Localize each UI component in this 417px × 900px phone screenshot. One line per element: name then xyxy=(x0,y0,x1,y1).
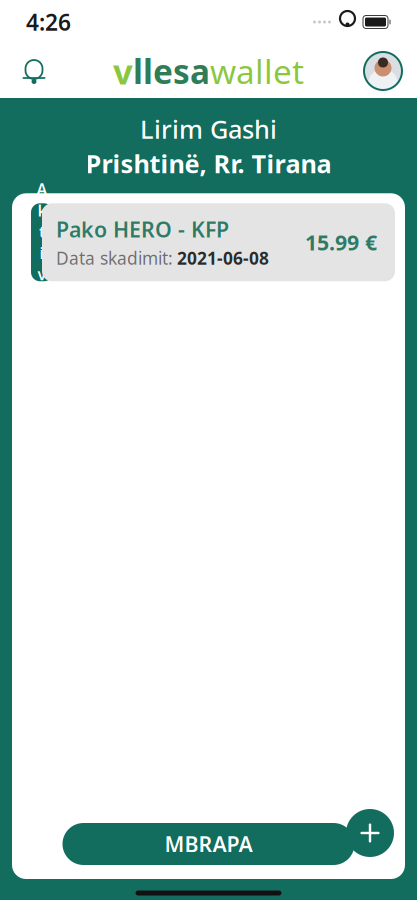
staticText: i xyxy=(39,242,44,263)
staticText: v xyxy=(37,263,46,285)
staticText: MBRAPA xyxy=(164,830,252,858)
staticText: 2021-06-08 xyxy=(177,246,269,269)
staticText: v xyxy=(113,48,133,94)
button[interactable]: Add package xyxy=(346,809,394,857)
button[interactable]: A xyxy=(20,203,395,281)
button[interactable]: Notifications xyxy=(12,49,56,93)
staticText: 4:26 xyxy=(26,7,71,37)
staticText: 15.99 € xyxy=(305,228,377,256)
staticText: Pako HERO - KFP xyxy=(56,215,229,243)
staticText: Prishtinë, Rr. Tirana xyxy=(85,147,331,180)
staticText: A xyxy=(36,178,47,200)
staticText: wallet xyxy=(210,49,304,93)
staticText: Data skadimit: xyxy=(56,246,173,269)
staticText: t xyxy=(39,221,45,242)
button[interactable]: MBRAPA xyxy=(62,823,354,865)
staticText: k xyxy=(37,200,46,221)
staticText: llesa xyxy=(133,49,210,93)
staticText: Lirim Gashi xyxy=(140,112,277,146)
button[interactable]: Profile xyxy=(361,49,405,93)
